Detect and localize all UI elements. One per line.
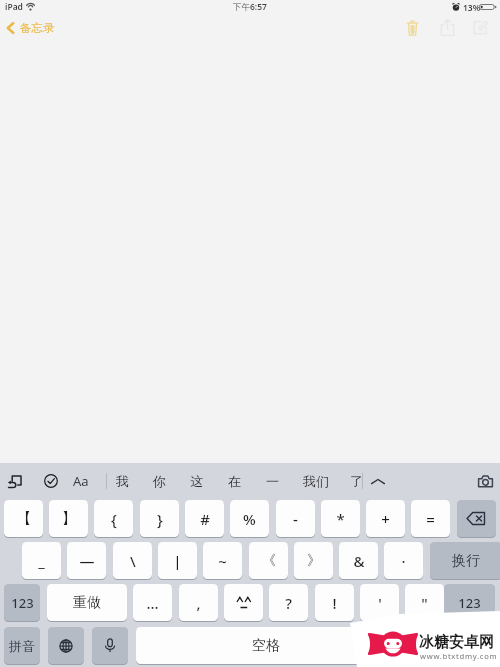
button[interactable]: ! (315, 584, 354, 621)
staticText: iPad (5, 1, 23, 13)
button[interactable]: ' (360, 584, 399, 621)
staticText: 123 (458, 594, 481, 612)
button[interactable]: Delete (397, 13, 427, 42)
staticText: — (79, 551, 95, 571)
staticText: 我们 (303, 473, 329, 489)
staticText: _ (38, 551, 45, 571)
staticText: 换行 (452, 552, 480, 570)
button[interactable]: Expand candidates (366, 464, 390, 498)
staticText: } (157, 509, 163, 529)
staticText: 拼音 (9, 638, 35, 654)
staticText: ? (285, 593, 292, 613)
button[interactable]: 【 (4, 500, 43, 537)
button[interactable]: , (179, 584, 218, 621)
button[interactable]: 这 (184, 464, 208, 498)
button[interactable]: \ (113, 542, 152, 579)
button[interactable]: Aa (70, 464, 92, 498)
button[interactable]: ? (269, 584, 308, 621)
staticText: 我 (116, 473, 129, 489)
button[interactable]: Confirm (40, 464, 62, 498)
button[interactable]: Switch language (48, 627, 84, 664)
button[interactable]: 拼音 (4, 627, 40, 664)
button[interactable]: = (411, 500, 450, 537)
staticText: 】 (62, 510, 76, 528)
button[interactable]: " (405, 584, 444, 621)
staticText: 备忘录 (20, 21, 55, 35)
staticText: 【 (17, 510, 31, 528)
staticText: 冰糖安卓网 (419, 633, 494, 652)
staticText: ! (332, 593, 337, 613)
button[interactable]: 在 (222, 464, 246, 498)
staticText: 你 (153, 473, 166, 489)
button[interactable]: 一 (260, 464, 284, 498)
button[interactable]: Undo (4, 464, 26, 498)
button[interactable]: 123 (444, 584, 495, 621)
button[interactable]: 空格 (136, 627, 396, 664)
button[interactable]: Camera (472, 464, 498, 498)
staticText: 在 (228, 473, 241, 489)
button[interactable]: Backspace (457, 500, 496, 537)
staticText: & (353, 551, 365, 571)
staticText: 《 (262, 552, 276, 570)
button[interactable]: 你 (147, 464, 171, 498)
staticText: + (381, 509, 390, 529)
staticText: % (243, 509, 256, 529)
staticText: , (196, 593, 201, 613)
button[interactable]: & (339, 542, 378, 579)
button[interactable]: 重做 (47, 584, 127, 621)
button[interactable]: } (140, 500, 179, 537)
staticText: = (426, 509, 435, 529)
staticText: 》 (307, 552, 321, 570)
staticText: Aa (73, 472, 89, 490)
staticText: 空格 (252, 637, 280, 655)
button[interactable]: { (94, 500, 133, 537)
button[interactable]: + (366, 500, 405, 537)
button[interactable]: 备忘录 (0, 17, 65, 39)
button[interactable] (224, 584, 263, 621)
button[interactable]: Share (432, 13, 462, 42)
button[interactable]: Dictation (92, 627, 128, 664)
button[interactable]: - (276, 500, 315, 537)
staticText: " (421, 593, 428, 613)
staticText: 13% (463, 2, 481, 14)
button[interactable]: _ (22, 542, 61, 579)
staticText: { (111, 509, 117, 529)
button[interactable]: * (321, 500, 360, 537)
staticText: 这 (190, 473, 203, 489)
button[interactable]: 换行 (430, 542, 500, 579)
button[interactable]: 了 (351, 464, 362, 498)
staticText: \ (130, 551, 136, 571)
staticText: 一 (266, 473, 279, 489)
staticText: * (336, 509, 345, 529)
button[interactable]: ~ (203, 542, 242, 579)
staticText: ~ (218, 551, 227, 571)
staticText: 重做 (73, 594, 101, 612)
button[interactable]: 我 (110, 464, 134, 498)
button[interactable]: | (158, 542, 197, 579)
staticText: | (173, 551, 182, 571)
staticText: 123 (11, 594, 34, 612)
button[interactable]: — (67, 542, 106, 579)
button[interactable]: 》 (294, 542, 333, 579)
button[interactable]: 123 (4, 584, 40, 621)
staticText: ... (146, 593, 159, 613)
button[interactable]: · (384, 542, 423, 579)
staticText: www.btxtdmy.com (420, 651, 498, 661)
button[interactable]: # (185, 500, 224, 537)
staticText: · (401, 551, 406, 571)
staticText: 了 (351, 473, 361, 489)
staticText: ' (378, 593, 382, 613)
button[interactable]: 】 (49, 500, 88, 537)
staticText: - (293, 509, 298, 529)
button[interactable]: 我们 (299, 464, 333, 498)
button[interactable]: ... (133, 584, 172, 621)
button[interactable]: 《 (249, 542, 288, 579)
staticText: 下午6:57 (233, 1, 267, 13)
button[interactable]: % (230, 500, 269, 537)
staticText: # (200, 509, 210, 529)
